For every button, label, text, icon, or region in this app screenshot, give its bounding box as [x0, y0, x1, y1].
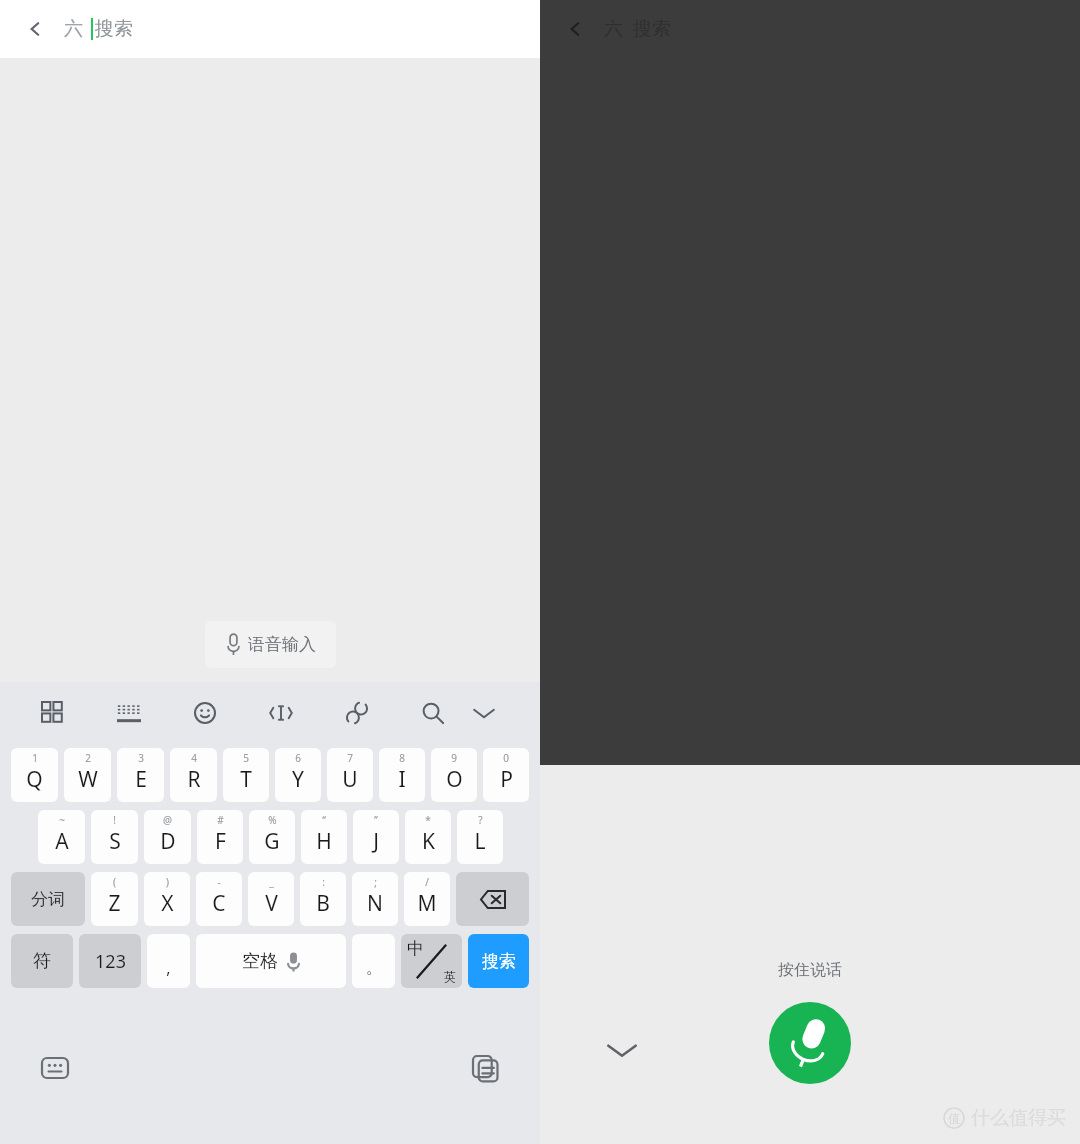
- button[interactable]: !: [91, 810, 138, 864]
- button[interactable]: 6: [275, 748, 321, 802]
- button[interactable]: Search: [416, 696, 450, 730]
- button[interactable]: Chinese English toggle: [401, 934, 462, 988]
- staticText: I: [398, 765, 406, 794]
- staticText: :: [322, 875, 325, 889]
- button[interactable]: 。: [352, 934, 395, 988]
- button[interactable]: Close voice input: [592, 1020, 652, 1080]
- button[interactable]: ~: [38, 810, 85, 864]
- staticText: V: [265, 889, 278, 918]
- staticText: !: [113, 813, 116, 827]
- staticText: 5: [243, 751, 249, 765]
- staticText: R: [187, 765, 201, 794]
- button[interactable]: (: [91, 872, 138, 926]
- button[interactable]: ,: [147, 934, 190, 988]
- button[interactable]: 9: [431, 748, 477, 802]
- staticText: 空格: [242, 950, 278, 973]
- staticText: N: [367, 889, 383, 918]
- button[interactable]: 2: [64, 748, 111, 802]
- button[interactable]: Emoji: [188, 696, 222, 730]
- staticText: 语音输入: [248, 634, 316, 655]
- staticText: 2: [85, 751, 91, 765]
- staticText: *: [425, 813, 431, 827]
- staticText: D: [160, 827, 176, 856]
- button[interactable]: 1: [11, 748, 58, 802]
- button[interactable]: *: [405, 810, 451, 864]
- button[interactable]: 0: [483, 748, 529, 802]
- button[interactable]: Backspace: [456, 872, 529, 926]
- button[interactable]: @: [144, 810, 191, 864]
- button[interactable]: Clipboard: [462, 1045, 508, 1091]
- button[interactable]: 空格: [196, 934, 346, 988]
- staticText: _: [269, 875, 274, 889]
- button[interactable]: %: [249, 810, 295, 864]
- staticText: 符: [33, 950, 51, 973]
- button[interactable]: Back: [554, 7, 598, 51]
- button[interactable]: Hold to talk: [769, 1002, 851, 1084]
- staticText: F: [215, 827, 226, 856]
- button[interactable]: 搜索: [468, 934, 529, 988]
- button[interactable]: 分词: [11, 872, 85, 926]
- staticText: 6: [295, 751, 301, 765]
- staticText: 8: [399, 751, 405, 765]
- button[interactable]: -: [196, 872, 242, 926]
- button[interactable]: ;: [352, 872, 398, 926]
- button[interactable]: Cursor: [264, 696, 298, 730]
- staticText: 英: [444, 969, 456, 984]
- staticText: K: [422, 827, 435, 856]
- button[interactable]: #: [197, 810, 243, 864]
- staticText: A: [55, 827, 69, 856]
- button[interactable]: Clip: [340, 696, 374, 730]
- staticText: X: [161, 889, 174, 918]
- staticText: @: [163, 813, 172, 827]
- staticText: 9: [451, 751, 457, 765]
- button[interactable]: Switch keyboard: [32, 1045, 78, 1091]
- button[interactable]: 3: [117, 748, 164, 802]
- button[interactable]: Hide keyboard: [464, 693, 504, 733]
- button[interactable]: 123: [79, 934, 141, 988]
- staticText: 六: [64, 17, 83, 41]
- button[interactable]: 8: [379, 748, 425, 802]
- staticText: #: [217, 813, 224, 827]
- button[interactable]: _: [248, 872, 294, 926]
- staticText: M: [417, 889, 437, 918]
- staticText: B: [316, 889, 330, 918]
- staticText: 0: [503, 751, 509, 765]
- button[interactable]: Layouts: [36, 696, 70, 730]
- staticText: 搜索: [633, 17, 671, 41]
- staticText: H: [316, 827, 332, 856]
- staticText: Y: [292, 765, 304, 794]
- button[interactable]: :: [300, 872, 346, 926]
- button[interactable]: “: [301, 810, 347, 864]
- button[interactable]: ”: [353, 810, 399, 864]
- button[interactable]: Back: [14, 7, 58, 51]
- staticText: 中: [407, 938, 424, 959]
- staticText: L: [474, 827, 486, 856]
- button[interactable]: 7: [327, 748, 373, 802]
- staticText: ): [166, 875, 169, 889]
- staticText: 分词: [31, 889, 65, 910]
- staticText: 按住说话: [778, 960, 842, 980]
- staticText: U: [342, 765, 358, 794]
- staticText: 3: [138, 751, 144, 765]
- staticText: 值: [948, 1111, 960, 1126]
- button[interactable]: /: [404, 872, 450, 926]
- staticText: 。: [366, 958, 382, 978]
- staticText: 1: [32, 751, 38, 765]
- staticText: ;: [374, 875, 377, 889]
- staticText: J: [373, 827, 379, 856]
- button[interactable]: 语音输入: [205, 621, 336, 668]
- staticText: 搜索: [482, 951, 516, 972]
- staticText: ,: [166, 957, 171, 979]
- staticText: (: [113, 875, 116, 889]
- button[interactable]: Keyboard: [112, 696, 146, 730]
- staticText: E: [135, 765, 147, 794]
- button[interactable]: 4: [170, 748, 217, 802]
- staticText: %: [268, 813, 277, 827]
- staticText: C: [212, 889, 226, 918]
- button[interactable]: ): [144, 872, 190, 926]
- staticText: Q: [26, 765, 43, 794]
- button[interactable]: 符: [11, 934, 73, 988]
- button[interactable]: ?: [457, 810, 503, 864]
- button[interactable]: 5: [223, 748, 269, 802]
- staticText: -: [217, 875, 221, 889]
